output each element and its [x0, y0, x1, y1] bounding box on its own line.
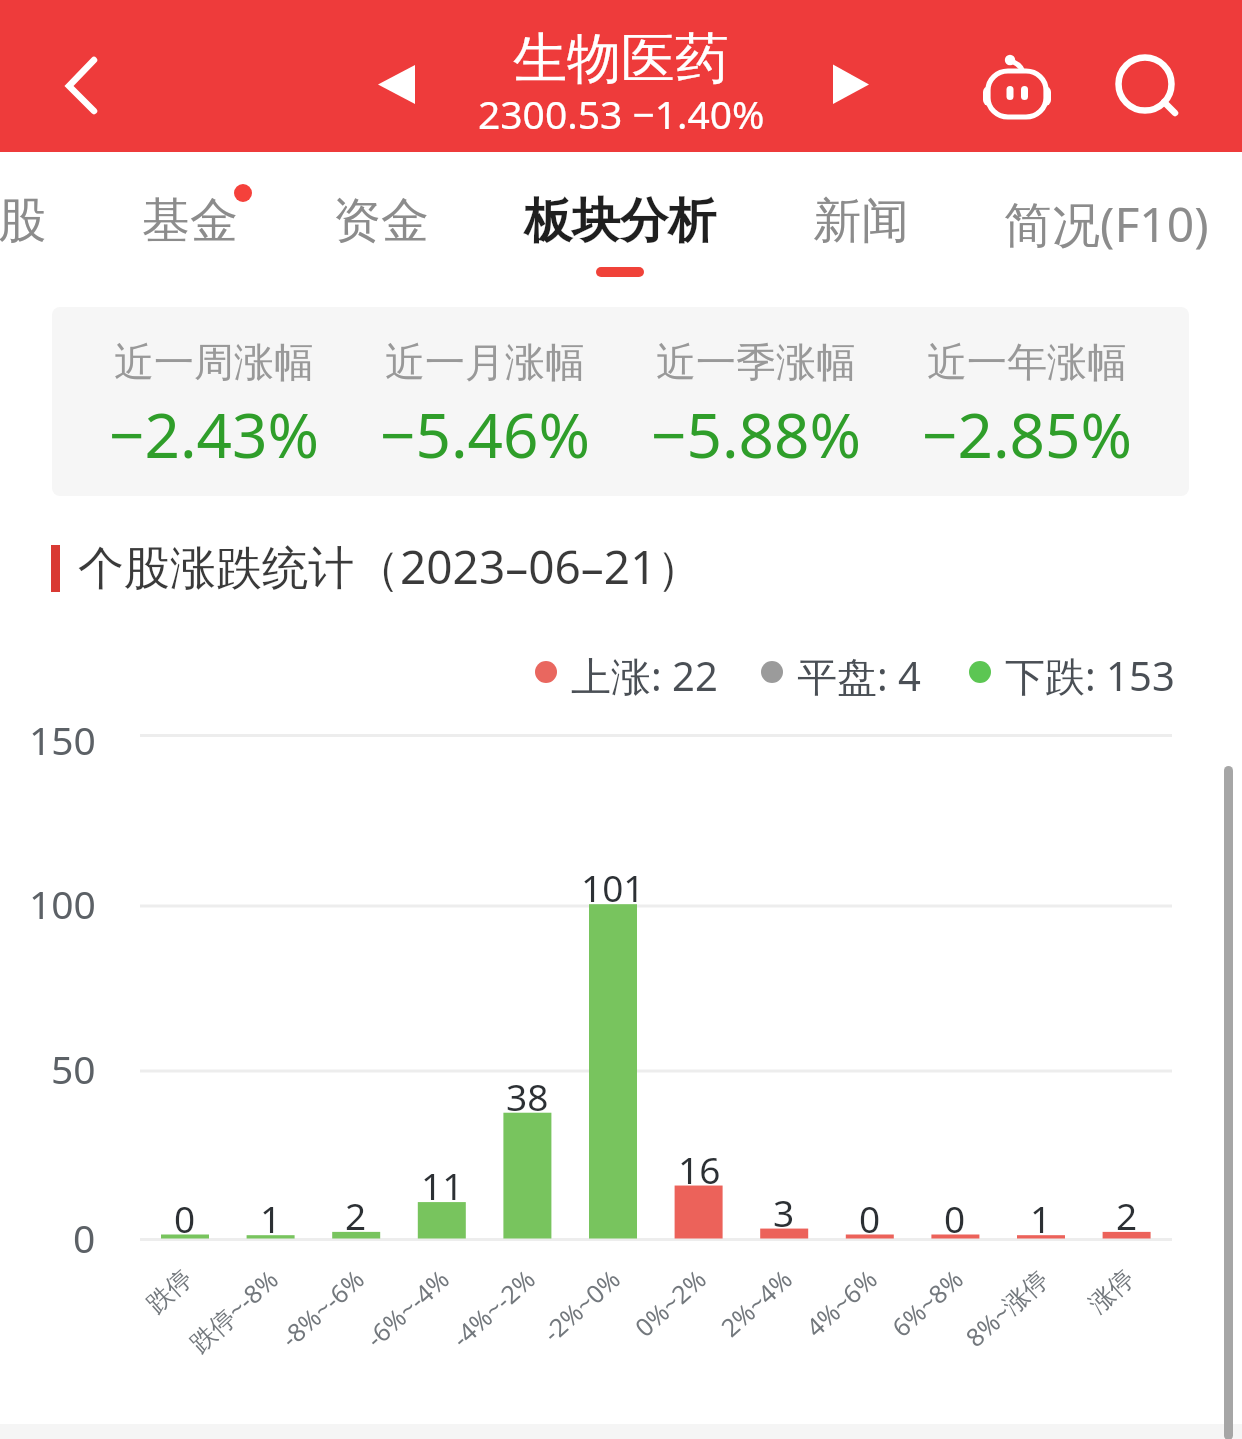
staticText: 跌停 — [140, 1263, 198, 1319]
staticText: 个股涨跌统计（2023–06–21） — [78, 535, 703, 598]
button[interactable]: 基金 — [115, 152, 265, 307]
button[interactable]: 股 — [0, 152, 77, 307]
staticText: 简况(F10) — [1004, 191, 1209, 257]
staticText: 板块分析 — [524, 191, 716, 251]
staticText: −5.88% — [651, 392, 861, 476]
staticText: 近一周涨幅 — [114, 337, 314, 387]
staticText: 基金 — [142, 191, 238, 251]
button[interactable]: 平盘: 4 — [761, 648, 927, 696]
button[interactable]: Back — [44, 38, 140, 134]
button[interactable]: 上涨: 22 — [535, 648, 717, 696]
staticText: 4%~6% — [798, 1261, 884, 1344]
staticText: 38 — [506, 1071, 549, 1121]
staticText: 资金 — [333, 191, 429, 251]
button[interactable]: Search — [1095, 34, 1195, 134]
staticText: -2%~0% — [535, 1261, 627, 1349]
staticText: 100 — [29, 877, 96, 930]
staticText: 11 — [421, 1160, 464, 1210]
staticText: 16 — [678, 1144, 721, 1194]
staticText: 生物医药 — [513, 25, 729, 93]
button[interactable]: 板块分析 — [505, 152, 735, 307]
staticText: 平盘: 4 — [797, 648, 921, 696]
staticText: −2.85% — [922, 392, 1132, 476]
button[interactable]: 简况(F10) — [986, 152, 1226, 307]
staticText: -4%~-2% — [444, 1261, 542, 1354]
button[interactable]: 近一周涨幅 — [79, 307, 349, 496]
button[interactable]: 资金 — [306, 152, 456, 307]
staticText: 近一年涨幅 — [927, 337, 1127, 387]
staticText: 0 — [73, 1211, 96, 1264]
button[interactable]: 新闻 — [786, 152, 936, 307]
staticText: 跌停~-8% — [182, 1261, 285, 1359]
staticText: -8%~-6% — [273, 1261, 371, 1354]
staticText: 涨停 — [1082, 1263, 1140, 1319]
staticText: 0 — [944, 1193, 966, 1243]
staticText: 下跌: 153 — [1005, 648, 1174, 696]
staticText: 1 — [260, 1193, 282, 1243]
button[interactable]: Previous sector — [356, 42, 442, 128]
staticText: 8%~涨停 — [958, 1261, 1055, 1354]
staticText: 50 — [51, 1042, 96, 1095]
staticText: 近一月涨幅 — [385, 337, 585, 387]
staticText: 0%~2% — [627, 1261, 713, 1344]
staticText: -6%~-4% — [358, 1261, 456, 1354]
staticText: 2300.53 −1.40% — [478, 87, 765, 140]
staticText: 0 — [174, 1193, 196, 1243]
staticText: 2 — [1116, 1190, 1138, 1240]
button[interactable]: 下跌: 153 — [969, 648, 1174, 696]
staticText: 2 — [345, 1190, 367, 1240]
button[interactable]: Assistant — [967, 38, 1067, 138]
button[interactable]: 近一季涨幅 — [620, 307, 891, 496]
button[interactable]: Next sector — [800, 42, 886, 128]
staticText: 150 — [29, 713, 96, 766]
staticText: −2.43% — [109, 392, 319, 476]
staticText: 股 — [0, 191, 46, 251]
staticText: 0 — [859, 1193, 881, 1243]
button[interactable]: 近一月涨幅 — [349, 307, 620, 496]
staticText: 3 — [773, 1187, 795, 1237]
staticText: 上涨: 22 — [571, 648, 717, 696]
staticText: 6%~8% — [884, 1261, 970, 1344]
staticText: 近一季涨幅 — [656, 337, 856, 387]
staticText: −5.46% — [380, 392, 590, 476]
staticText: 新闻 — [813, 191, 909, 251]
staticText: 1 — [1030, 1193, 1052, 1243]
button[interactable]: 近一年涨幅 — [891, 307, 1162, 496]
staticText: 2%~4% — [713, 1261, 799, 1344]
staticText: 101 — [581, 862, 645, 912]
